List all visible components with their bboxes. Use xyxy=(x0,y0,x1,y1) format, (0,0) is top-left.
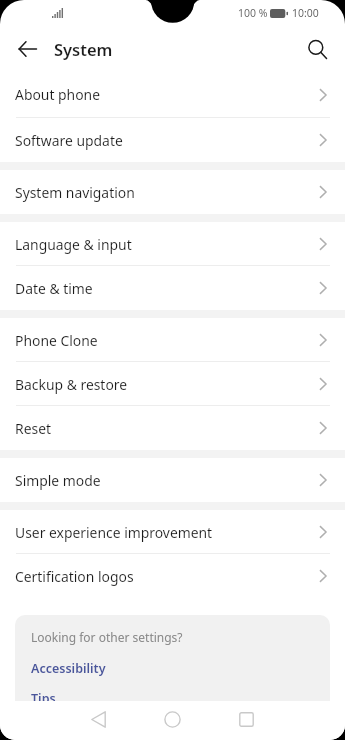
button[interactable]: Recent apps xyxy=(224,700,269,739)
button[interactable]: Simple mode xyxy=(0,458,345,502)
button[interactable]: Backup & restore xyxy=(0,362,345,406)
staticText: Phone Clone xyxy=(15,331,98,350)
button[interactable]: Back xyxy=(76,700,121,739)
button[interactable]: Software update xyxy=(0,118,345,162)
staticText: Certification logos xyxy=(15,567,134,586)
button[interactable]: Phone Clone xyxy=(0,318,345,362)
staticText: System navigation xyxy=(15,183,135,202)
staticText: Language & input xyxy=(15,235,132,254)
staticText: 100 % xyxy=(238,6,268,20)
staticText: Date & time xyxy=(15,279,93,298)
staticText: User experience improvement xyxy=(15,523,213,542)
button[interactable]: Tips xyxy=(31,690,56,701)
staticText: 10:00 xyxy=(292,6,319,20)
staticText: System xyxy=(54,38,113,60)
button[interactable]: System navigation xyxy=(0,170,345,214)
button[interactable]: Date & time xyxy=(0,266,345,310)
staticText: Simple mode xyxy=(15,471,101,490)
button[interactable]: Search xyxy=(299,31,335,67)
staticText: Looking for other settings? xyxy=(31,629,183,645)
staticText: Reset xyxy=(15,419,51,438)
button[interactable]: Language & input xyxy=(0,222,345,266)
staticText: Backup & restore xyxy=(15,375,128,394)
button[interactable]: About phone xyxy=(0,74,345,118)
button[interactable]: Home xyxy=(150,700,195,739)
button[interactable]: Back xyxy=(9,31,45,67)
button[interactable]: Reset xyxy=(0,406,345,450)
button[interactable]: Certification logos xyxy=(0,554,345,598)
staticText: About phone xyxy=(15,85,100,104)
staticText: Software update xyxy=(15,131,123,150)
button[interactable]: Accessibility xyxy=(31,660,106,677)
button[interactable]: User experience improvement xyxy=(0,510,345,554)
